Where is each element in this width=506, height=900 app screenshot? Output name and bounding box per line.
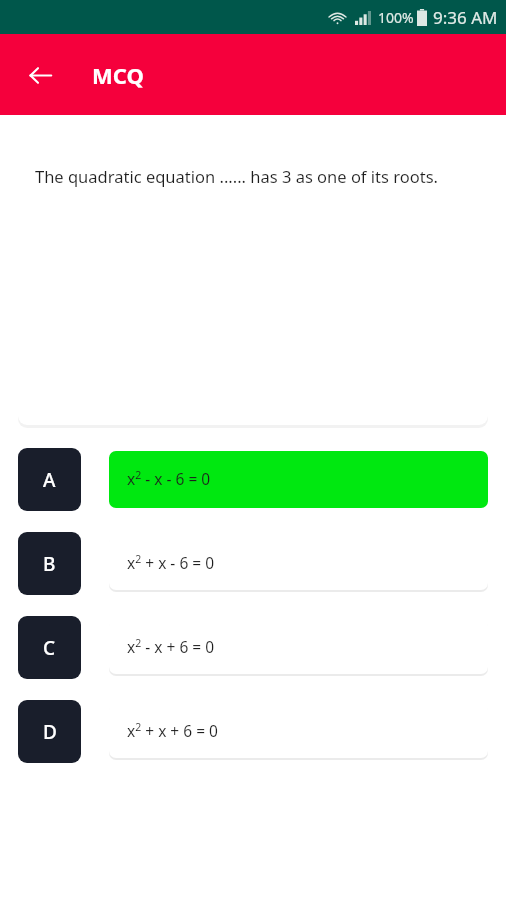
staticText: The quadratic equation ...... has 3 as o… <box>35 165 438 187</box>
staticText: B <box>43 551 56 577</box>
button[interactable]: B <box>18 532 488 595</box>
staticText: MCQ <box>92 60 144 90</box>
staticText: x2 + x - 6 = 0 <box>127 552 215 573</box>
staticText: x2 - x + 6 = 0 <box>127 636 215 657</box>
staticText: 9:36 AM <box>433 6 498 29</box>
button[interactable]: A <box>18 448 488 511</box>
button[interactable]: C <box>18 616 488 679</box>
button[interactable]: D <box>18 700 488 763</box>
staticText: C <box>43 635 56 661</box>
staticText: 100% <box>378 8 414 27</box>
staticText: A <box>43 467 56 493</box>
staticText: x2 - x - 6 = 0 <box>127 468 211 489</box>
staticText: x2 + x + 6 = 0 <box>127 720 218 741</box>
button[interactable]: The quadratic equation ...... has 3 as o… <box>18 141 488 425</box>
button[interactable]: Back <box>14 49 66 101</box>
staticText: D <box>43 719 57 745</box>
